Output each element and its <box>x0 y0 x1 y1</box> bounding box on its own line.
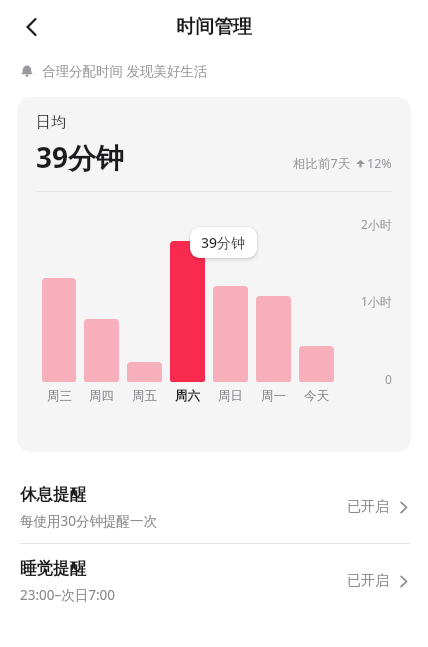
staticText: 39分钟 <box>201 233 246 252</box>
staticText: 23:00–次日7:00 <box>20 586 116 604</box>
staticText: 周三 <box>47 388 72 404</box>
staticText: 睡觉提醒 <box>20 558 86 579</box>
staticText: 39分钟 <box>36 138 125 176</box>
staticText: 日均 <box>36 113 66 132</box>
staticText: 0 <box>385 371 392 387</box>
staticText: 每使用30分钟提醒一次 <box>20 512 157 530</box>
staticText: 今天 <box>304 388 329 404</box>
staticText: 周一 <box>261 388 286 404</box>
button[interactable]: 日均 <box>17 97 411 452</box>
staticText: 2小时 <box>361 216 392 232</box>
staticText: 周六 <box>175 388 200 404</box>
staticText: 1小时 <box>361 293 392 309</box>
staticText: 相比前7天 <box>293 155 351 172</box>
staticText: 周四 <box>89 388 114 404</box>
staticText: 合理分配时间 发现美好生活 <box>42 62 208 80</box>
staticText: 12% <box>367 155 392 172</box>
staticText: 时间管理 <box>176 15 252 39</box>
staticText: 休息提醒 <box>20 484 86 505</box>
staticText: 周五 <box>132 388 157 404</box>
staticText: 周日 <box>218 388 243 404</box>
button[interactable]: 休息提醒 <box>0 470 428 543</box>
button[interactable]: Back <box>10 5 54 49</box>
staticText: 已开启 <box>347 498 389 516</box>
staticText: 已开启 <box>347 572 389 590</box>
button[interactable]: 睡觉提醒 <box>0 544 428 617</box>
